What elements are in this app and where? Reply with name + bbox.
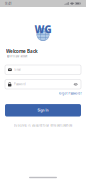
button[interactable]: Password [5,80,81,89]
staticText: Sign in to your account [6,55,27,58]
button[interactable]: Email [5,65,81,74]
staticText: WG [34,23,51,36]
button[interactable]: By signing in, you agree to our Terms an… [14,124,72,127]
staticText: Sign In [37,108,48,112]
button[interactable]: Sign In [5,104,81,116]
staticText: Email [14,68,21,71]
staticText: 9:41 [5,1,11,6]
staticText: Password [14,83,26,86]
button[interactable]: Forgot Password? [58,92,81,95]
staticText: By signing in, you agree to our Terms an… [14,124,72,127]
staticText: Forgot Password? [58,92,81,95]
staticText: Welcome Back [6,48,38,54]
